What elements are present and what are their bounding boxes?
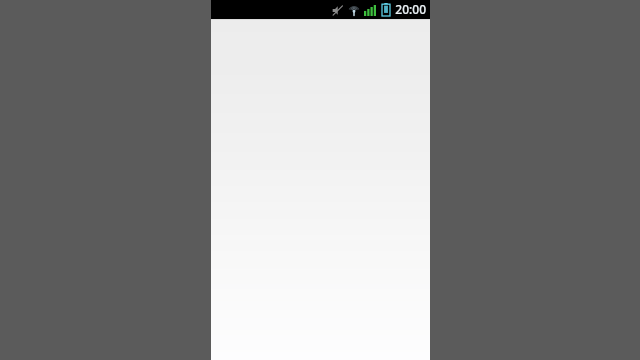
button[interactable]: Battery bbox=[380, 2, 392, 17]
staticText: 20:00 bbox=[395, 1, 426, 17]
button[interactable] bbox=[211, 20, 430, 360]
button[interactable]: Mobile signal bbox=[363, 3, 377, 17]
button[interactable]: Silent mode bbox=[330, 3, 344, 17]
button[interactable]: Location bbox=[346, 3, 361, 17]
